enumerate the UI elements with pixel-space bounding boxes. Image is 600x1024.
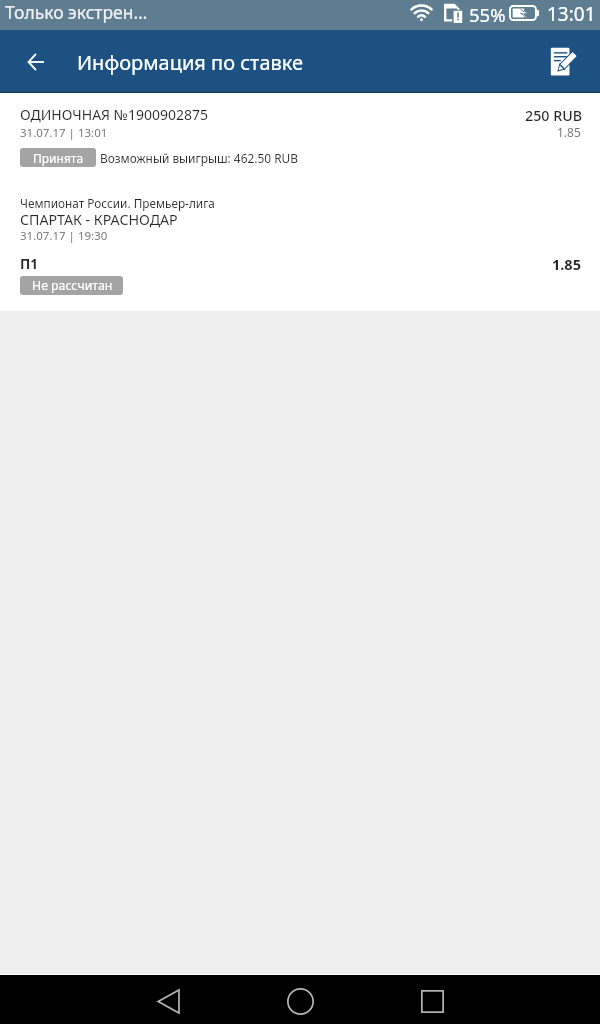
button[interactable]: Не рассчитан [20, 276, 123, 295]
button[interactable]: ОДИНОЧНАЯ №1900902875 [0, 93, 600, 311]
staticText: 250 RUB [525, 106, 583, 125]
staticText: Принята [33, 150, 84, 166]
button[interactable]: Принята [20, 148, 96, 167]
staticText: 1.85 [557, 124, 581, 140]
staticText: СПАРТАК - КРАСНОДАР [20, 210, 178, 229]
button[interactable]: Недавние [388, 977, 476, 1024]
button[interactable]: Редактировать [536, 30, 592, 93]
staticText: 13:01 [547, 1, 596, 27]
button[interactable]: Назад [124, 977, 212, 1024]
staticText: Возможный выигрыш: 462.50 RUB [100, 150, 298, 166]
staticText: 1.85 [552, 254, 581, 274]
staticText: ОДИНОЧНАЯ №1900902875 [20, 105, 209, 124]
button[interactable]: Назад [8, 30, 64, 93]
staticText: Не рассчитан [32, 277, 113, 294]
staticText: 31.07.17 | 19:30 [20, 228, 108, 244]
staticText: 31.07.17 | 13:01 [20, 125, 108, 141]
staticText: Только экстрен… [5, 0, 148, 24]
staticText: Чемпионат России. Премьер-лига [20, 195, 215, 211]
staticText: Информация по ставке [77, 49, 304, 76]
staticText: 55% [469, 2, 506, 27]
button[interactable]: Домой [256, 977, 344, 1024]
staticText: П1 [20, 255, 39, 273]
